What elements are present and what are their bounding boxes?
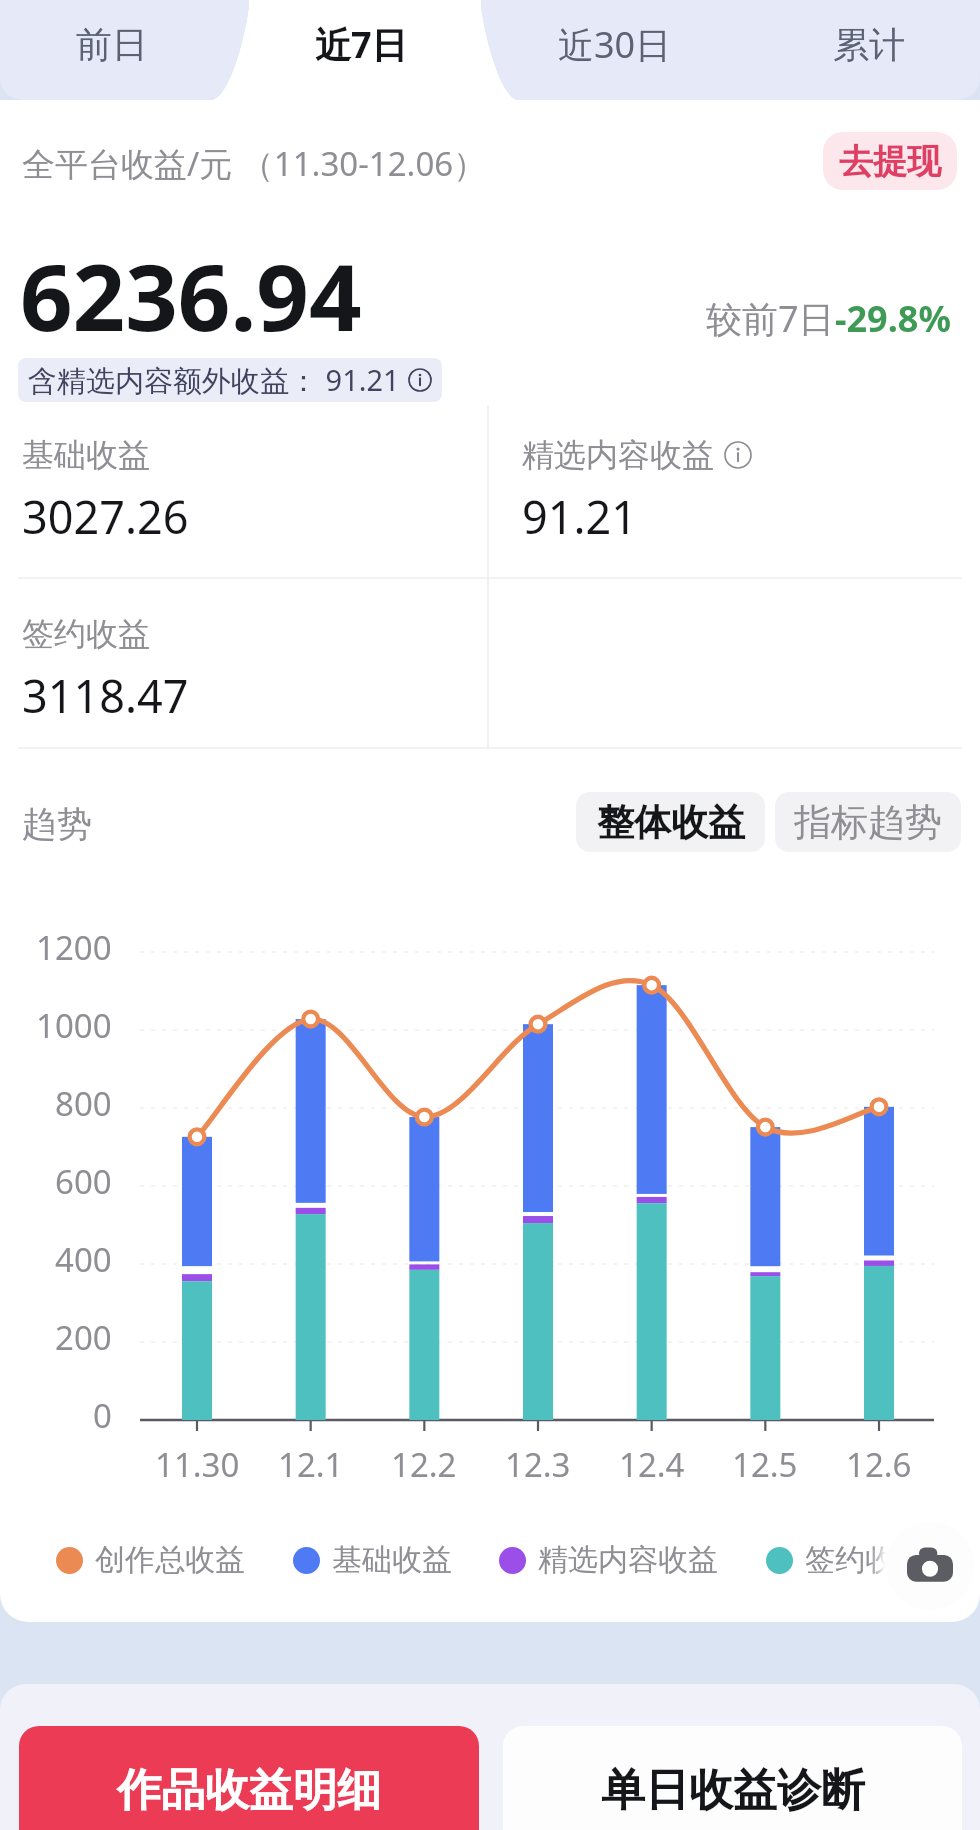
staticText: 指标趋势 (794, 799, 942, 846)
staticText: 600 (55, 1159, 112, 1204)
staticText: 精选内容收益 (538, 1541, 718, 1579)
staticText: 12.5 (732, 1442, 798, 1487)
button[interactable]: 近30日 (489, 0, 741, 100)
staticText: -29.8% (835, 294, 951, 343)
staticText: 前日 (76, 22, 148, 67)
button[interactable]: 前日 (0, 0, 223, 100)
button[interactable]: 累计 (743, 0, 980, 100)
staticText: 精选内容收益 (522, 435, 714, 475)
staticText: 全平台收益/元 （11.30-12.06） (22, 141, 487, 186)
staticText: 12.4 (619, 1442, 685, 1487)
staticText: 近30日 (558, 20, 672, 69)
staticText: 3027.26 (22, 486, 189, 547)
button[interactable]: 整体收益 (576, 792, 765, 852)
staticText: 12.6 (846, 1442, 912, 1487)
staticText: 11.30 (155, 1442, 240, 1487)
staticText: 较前7日 (706, 294, 835, 343)
staticText: 12.3 (505, 1442, 571, 1487)
staticText: 整体收益 (597, 799, 745, 846)
staticText: 基础收益 (22, 435, 150, 475)
staticText: 0 (93, 1393, 112, 1438)
button[interactable]: 指标趋势 (775, 792, 961, 852)
staticText: 创作总收益 (95, 1541, 245, 1579)
staticText: 去提现 (839, 140, 941, 183)
staticText: 签约收益 (805, 1541, 925, 1579)
staticText: 400 (55, 1237, 112, 1282)
staticText: 签约收益 (22, 614, 150, 654)
staticText: 200 (55, 1315, 112, 1360)
staticText: 3118.47 (22, 665, 189, 726)
staticText: 累计 (833, 22, 905, 67)
staticText: 6236.94 (20, 233, 362, 358)
button[interactable]: 近7日 (235, 0, 487, 100)
staticText: 800 (55, 1081, 112, 1126)
staticText: 近7日 (315, 20, 408, 69)
staticText: 1000 (36, 1003, 112, 1048)
staticText: 12.2 (391, 1442, 457, 1487)
staticText: 12.1 (278, 1442, 344, 1487)
button[interactable]: 单日收益诊断 (503, 1726, 962, 1830)
button[interactable]: Screenshot (886, 1522, 974, 1610)
staticText: 单日收益诊断 (601, 1763, 865, 1818)
staticText: 1200 (36, 925, 112, 970)
staticText: 91.21 (522, 486, 638, 547)
staticText: 趋势 (22, 802, 92, 846)
staticText: 含精选内容额外收益： 91.21 (28, 360, 400, 400)
staticText: 基础收益 (332, 1541, 452, 1579)
staticText: 作品收益明细 (117, 1763, 381, 1818)
button[interactable]: 去提现 (823, 132, 957, 190)
button[interactable]: 作品收益明细 (19, 1726, 479, 1830)
